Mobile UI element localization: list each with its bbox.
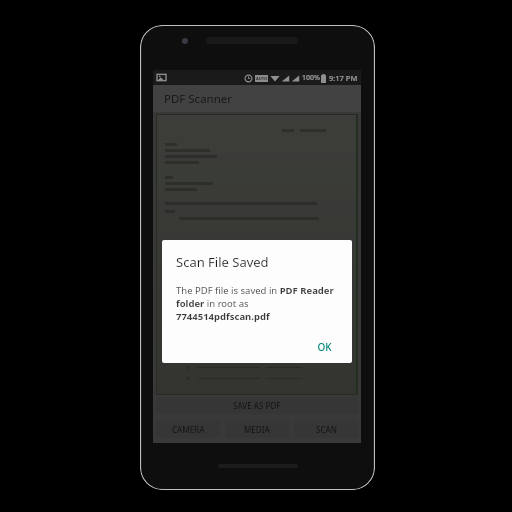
button[interactable]: SAVE AS PDF: [156, 397, 358, 414]
staticText: PDF Scanner: [164, 91, 233, 107]
staticText: 100%: [302, 73, 320, 83]
staticText: MEDIA: [244, 424, 270, 435]
button[interactable]: OK: [309, 335, 340, 359]
staticText: OK: [317, 340, 332, 354]
button[interactable]: CAMERA: [156, 421, 220, 438]
staticText: CAMERA: [172, 424, 205, 435]
staticText: Scan File Saved: [176, 253, 269, 271]
staticText: SAVE AS PDF: [233, 400, 281, 411]
button[interactable]: SCAN: [294, 421, 358, 438]
staticText: AUTO: [256, 76, 268, 81]
staticText: The PDF file is saved in PDF Reader fold…: [176, 284, 340, 323]
staticText: 9:17 PM: [329, 73, 358, 83]
staticText: SCAN: [316, 424, 337, 435]
button[interactable]: MEDIA: [225, 421, 289, 438]
